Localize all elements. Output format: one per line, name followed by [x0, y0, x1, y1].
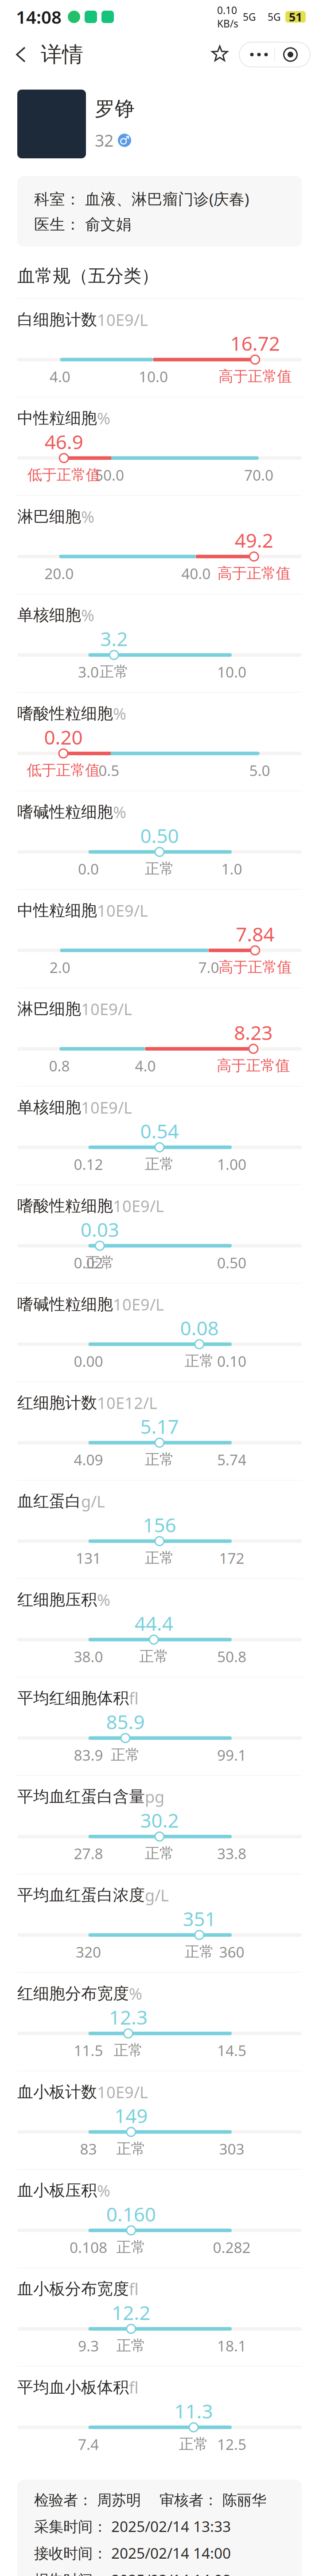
staticText: 1.00 [217, 1154, 246, 1174]
staticText: 嗜碱性粒细胞 [17, 802, 113, 822]
staticText: 11.3 [174, 2398, 213, 2424]
staticText: 12.3 [109, 2004, 147, 2030]
staticText: 淋巴细胞 [17, 999, 81, 1019]
staticText: 0.12 [74, 1154, 103, 1174]
staticText: 16.72 [230, 330, 280, 356]
staticText: 5.0 [249, 760, 270, 780]
staticText: 14.5 [217, 2040, 246, 2060]
staticText: 医生： 俞文娟 [34, 215, 132, 234]
staticText: 172 [219, 1548, 244, 1568]
button[interactable]: 更多 [239, 42, 310, 67]
staticText: 5.17 [140, 1413, 179, 1439]
staticText: 正常 [116, 2337, 146, 2355]
staticText: 0.50 [217, 1253, 246, 1272]
staticText: 320 [76, 1942, 101, 1962]
staticText: 18.1 [217, 2336, 246, 2356]
staticText: 0.50 [140, 823, 179, 848]
staticText: 0.0 [78, 859, 99, 879]
staticText: 7.4 [78, 2434, 99, 2454]
staticText: 正常 [145, 1844, 174, 1862]
button[interactable]: 收藏 [209, 44, 230, 65]
staticText: 83 [80, 2139, 97, 2159]
staticText: 白细胞计数 [17, 310, 97, 329]
staticText: 12.5 [217, 2434, 246, 2454]
staticText: 0.08 [180, 1315, 219, 1341]
staticText: ♂ [119, 134, 130, 147]
staticText: 7.84 [236, 921, 274, 947]
staticText: 正常 [145, 860, 174, 878]
staticText: 0.10 KB/s [217, 4, 238, 30]
staticText: 血小板压积 [17, 2181, 97, 2200]
staticText: % [97, 2180, 110, 2201]
staticText: 红细胞计数 [17, 1393, 97, 1413]
staticText: % [113, 801, 126, 823]
staticText: 10E12/L [97, 1392, 157, 1413]
staticText: 99.1 [217, 1745, 246, 1765]
staticText: 血红蛋白 [17, 1491, 81, 1511]
staticText: 低于正常值 [27, 466, 100, 484]
staticText: 32 [95, 129, 113, 151]
staticText: 51 [289, 9, 302, 25]
staticText: 14:08 [16, 5, 62, 29]
staticText: 低于正常值 [27, 761, 100, 779]
staticText: 正常 [111, 1746, 140, 1764]
staticText: 1.0 [221, 859, 242, 879]
button[interactable]: 返回 [10, 42, 35, 67]
staticText: 70.0 [244, 465, 273, 485]
staticText: 0.282 [213, 2237, 251, 2257]
staticText: 85.9 [106, 1709, 145, 1735]
staticText: 红细胞分布宽度 [17, 1984, 129, 2003]
staticText: 正常 [185, 1352, 214, 1370]
staticText: 0.5 [98, 760, 119, 780]
staticText: 嗜酸性粒细胞 [17, 1196, 113, 1216]
staticText: 正常 [116, 2140, 146, 2158]
staticText: 10.0 [217, 662, 246, 682]
staticText: 50.8 [217, 1647, 246, 1666]
staticText: 中性粒细胞 [17, 408, 97, 428]
staticText: 正常 [139, 1647, 168, 1666]
staticText: 罗铮 [95, 97, 135, 121]
staticText: % [97, 1589, 110, 1610]
staticText: 0.160 [106, 2201, 156, 2227]
staticText: 8.23 [234, 1019, 273, 1045]
staticText: 12.2 [112, 2299, 150, 2325]
staticText: 30.2 [140, 1807, 179, 1833]
staticText: 嗜酸性粒细胞 [17, 704, 113, 723]
staticText: 20.0 [44, 564, 74, 583]
staticText: fl [129, 2278, 139, 2300]
staticText: % [81, 604, 94, 626]
staticText: 4.0 [50, 367, 70, 386]
staticText: 血小板计数 [17, 2082, 97, 2102]
staticText: 正常 [145, 1450, 174, 1469]
staticText: fl [129, 1688, 139, 1709]
staticText: 正常 [114, 2041, 143, 2059]
staticText: 46.9 [45, 429, 83, 455]
staticText: 10E9/L [97, 309, 148, 330]
staticText: % [97, 408, 110, 429]
staticText: 血常规（五分类） [17, 265, 159, 287]
staticText: 5G [268, 10, 281, 24]
staticText: 接收时间： 2025/02/14 14:00 [34, 2543, 231, 2563]
staticText: 131 [76, 1548, 101, 1568]
staticText: 11.5 [74, 2040, 103, 2060]
staticText: 10E9/L [81, 1097, 132, 1118]
staticText: 33.8 [217, 1844, 246, 1863]
staticText: 156 [143, 1512, 176, 1538]
staticText: 详情 [41, 41, 83, 68]
staticText: 单核细胞 [17, 1098, 81, 1117]
staticText: 0.108 [70, 2237, 107, 2257]
staticText: 27.8 [74, 1844, 103, 1863]
staticText: 49.2 [235, 527, 273, 553]
staticText: g/L [81, 1491, 105, 1512]
staticText: 40.0 [181, 564, 211, 583]
staticText: 83.9 [74, 1745, 103, 1765]
staticText: 正常 [179, 2435, 208, 2453]
staticText: 5.74 [217, 1450, 246, 1469]
staticText: 3.0 [78, 662, 99, 682]
staticText: 平均血小板体积 [17, 2378, 129, 2397]
staticText: 正常 [185, 1943, 214, 1961]
staticText: 4.09 [74, 1450, 103, 1469]
staticText: 平均血红蛋白浓度 [17, 1885, 145, 1905]
staticText: pg [145, 1786, 164, 1807]
staticText: 科室： 血液、淋巴瘤门诊(庆春) [34, 188, 249, 209]
